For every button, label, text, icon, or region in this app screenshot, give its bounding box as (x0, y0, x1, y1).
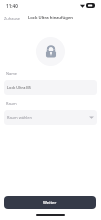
staticText: Raum (6, 101, 17, 106)
staticText: 11:40 (6, 3, 18, 9)
staticText: Raum wählen (7, 115, 32, 120)
button[interactable]: Raum wählen (4, 110, 97, 125)
staticText: Lock Ultra hinzufügen (28, 15, 74, 21)
button[interactable]: Lock Ultra BS (4, 80, 97, 95)
button[interactable]: Weiter (4, 196, 96, 209)
staticText: Name (6, 71, 17, 76)
other: Battery (86, 3, 95, 8)
staticText: Weiter (43, 200, 57, 206)
button[interactable]: Zuhause (4, 16, 21, 21)
other: Open room picker (89, 116, 94, 119)
staticText: Lock Ultra BS (7, 85, 31, 90)
other: Wi-Fi (80, 4, 85, 8)
